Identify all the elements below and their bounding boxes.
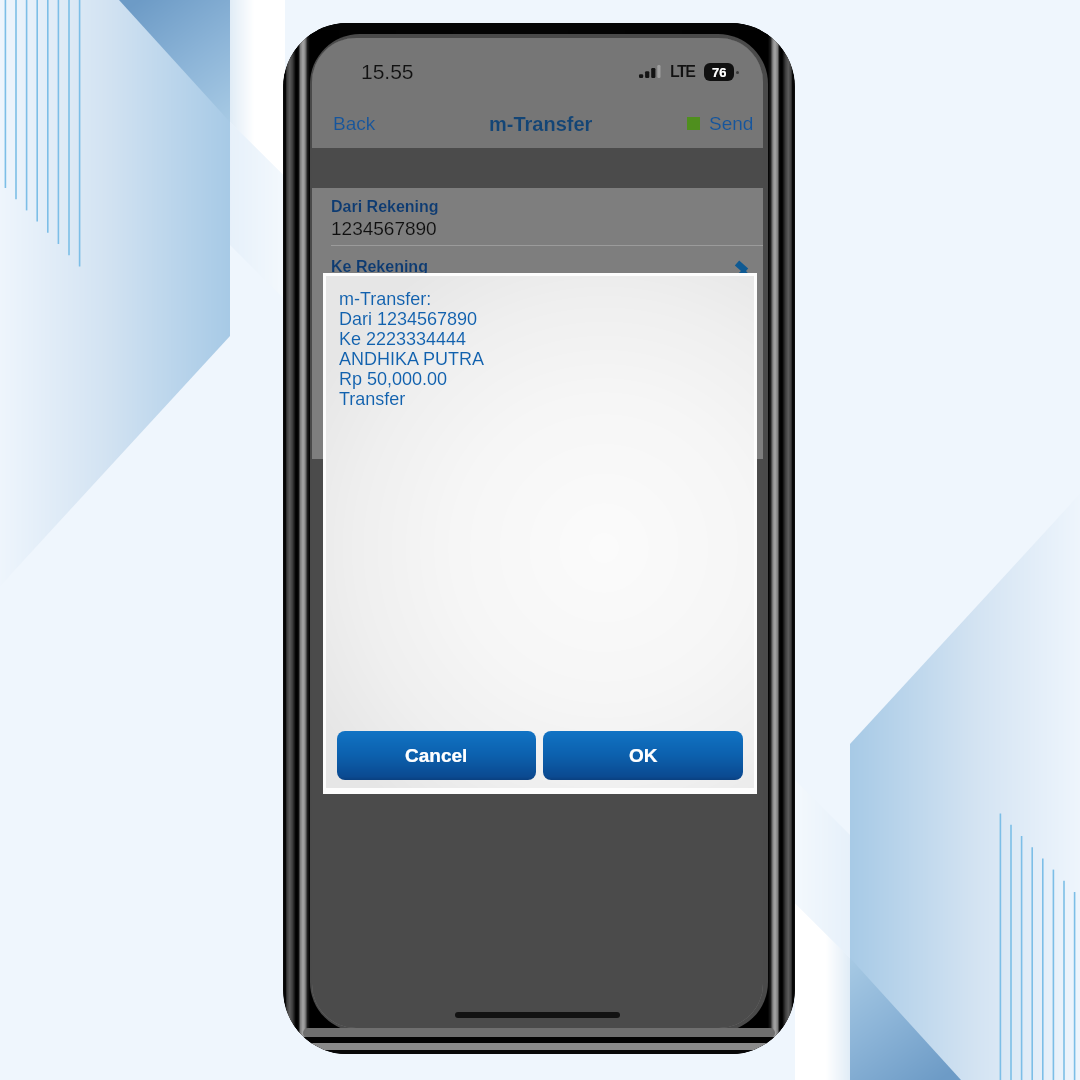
staticText: m-Transfer [489, 113, 593, 135]
staticText: Dari Rekening [331, 198, 439, 216]
staticText: 76 [712, 65, 727, 80]
button[interactable]: Cancel [337, 731, 536, 780]
staticText: Cancel [405, 745, 468, 766]
staticText: Send [709, 113, 754, 134]
button[interactable]: Dari Rekening [312, 188, 763, 246]
other: Battery 76 percent [704, 63, 739, 81]
staticText: Transfer [339, 389, 406, 409]
staticText: ANDHIKA PUTRA [339, 349, 485, 369]
staticText: 1234567890 [331, 218, 437, 239]
staticText: Dari 1234567890 [339, 309, 478, 329]
button[interactable]: Ke Rekening [312, 248, 763, 276]
other: Choose account [733, 260, 749, 282]
button[interactable]: Send [675, 104, 763, 145]
button[interactable]: Back [312, 104, 388, 145]
staticText: Rp 50,000.00 [339, 369, 448, 389]
staticText: LTE [670, 63, 695, 81]
staticText: m-Transfer: [339, 289, 432, 309]
staticText: Back [333, 113, 376, 134]
staticText: 15.55 [361, 60, 414, 83]
staticText: OK [629, 745, 658, 766]
button[interactable]: OK [543, 731, 743, 780]
staticText: Ke Rekening [331, 258, 428, 276]
staticText: Ke 2223334444 [339, 329, 467, 349]
